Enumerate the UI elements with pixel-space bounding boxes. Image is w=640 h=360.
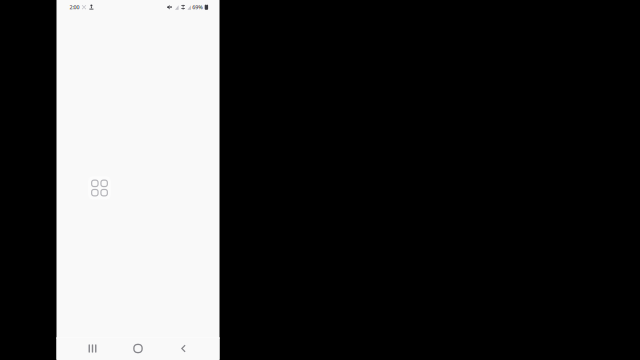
button[interactable]: Home: [118, 337, 158, 359]
button[interactable]: Apps: [88, 176, 111, 199]
button[interactable]: Recents: [72, 337, 112, 359]
button[interactable]: Back: [163, 337, 203, 359]
staticText: 2:00: [69, 4, 79, 11]
staticText: 69%: [192, 4, 203, 11]
